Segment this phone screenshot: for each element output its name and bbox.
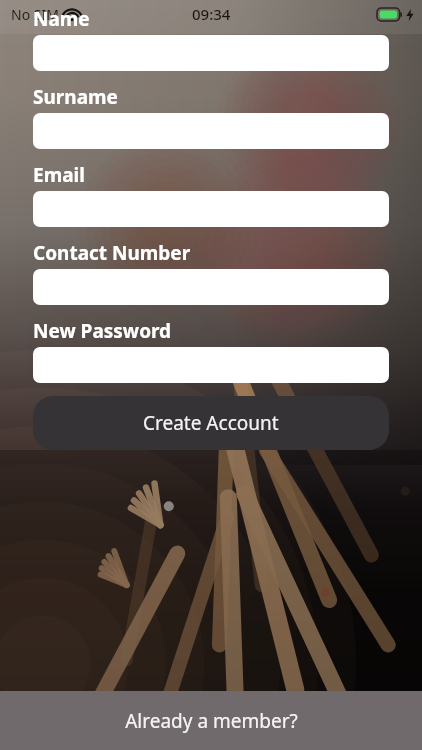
staticText: 09:34 [192, 4, 231, 24]
button[interactable]: Text input [33, 35, 389, 71]
staticText: Name [33, 6, 90, 32]
staticText: Email [33, 162, 85, 188]
staticText: New Password [33, 318, 172, 344]
button[interactable]: Text input [33, 269, 389, 305]
button[interactable]: Text input [33, 113, 389, 149]
button[interactable]: Already a member? [0, 691, 422, 750]
button[interactable]: Text input [33, 347, 389, 383]
staticText: Contact Number [33, 240, 191, 266]
staticText: No SIM [11, 5, 59, 24]
button[interactable]: Create Account [33, 396, 389, 450]
staticText: Create Account [143, 410, 279, 436]
button[interactable]: Text input [33, 191, 389, 227]
staticText: Already a member? [125, 708, 298, 734]
staticText: Surname [33, 84, 118, 110]
